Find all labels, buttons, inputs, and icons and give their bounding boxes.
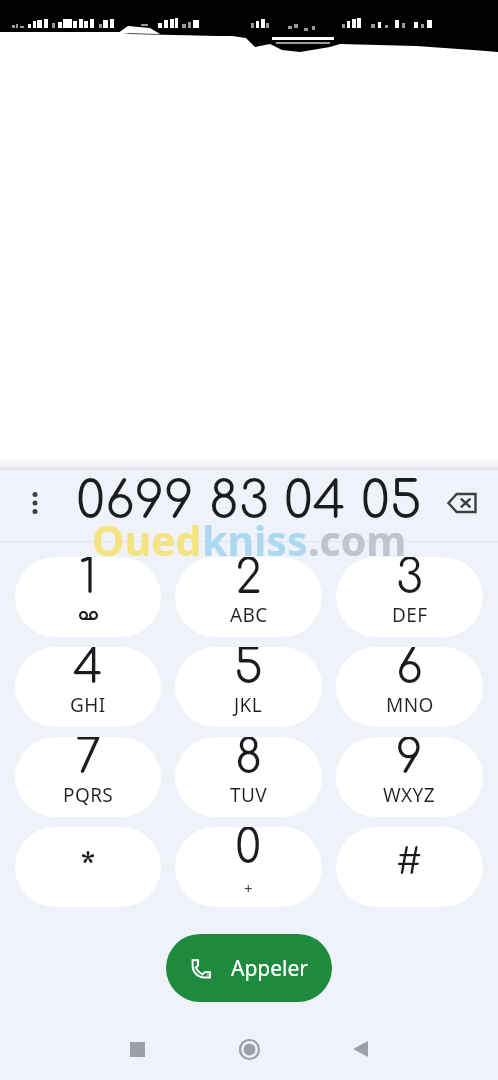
staticText: * xyxy=(80,848,96,894)
button[interactable]: Backspace xyxy=(440,481,484,525)
button[interactable]: 7 xyxy=(15,737,161,817)
staticText: WXYZ xyxy=(383,782,436,808)
button[interactable]: More options xyxy=(12,480,58,526)
staticText: 7 xyxy=(75,737,102,783)
button[interactable]: 4 xyxy=(15,647,161,727)
button[interactable]: 0 xyxy=(175,827,322,907)
button[interactable]: 5 xyxy=(175,647,322,727)
staticText: 1 xyxy=(79,557,97,603)
staticText: # xyxy=(396,842,423,882)
button[interactable]: 2 xyxy=(175,557,322,637)
button[interactable]: Recent apps xyxy=(113,1025,161,1073)
button[interactable]: Home xyxy=(225,1025,273,1073)
button[interactable]: 3 xyxy=(336,557,483,637)
staticText: 0 xyxy=(235,827,262,873)
button[interactable]: * xyxy=(15,827,161,907)
staticText: ABC xyxy=(230,602,268,628)
staticText: 5 xyxy=(234,647,263,693)
staticText: GHI xyxy=(70,692,106,718)
staticText: 0699 83 04 05 xyxy=(76,473,422,530)
staticText: DEF xyxy=(392,602,428,628)
staticText: TUV xyxy=(230,782,268,808)
staticText: .com xyxy=(308,512,407,568)
staticText: 8 xyxy=(235,737,263,783)
staticText: JKL xyxy=(234,692,263,718)
button[interactable]: Back xyxy=(336,1025,384,1073)
staticText: + xyxy=(244,878,253,898)
staticText: PQRS xyxy=(63,782,114,808)
staticText: MNO xyxy=(386,692,434,718)
staticText: 4 xyxy=(73,647,103,693)
button[interactable]: 1 xyxy=(15,557,161,637)
staticText: Oued xyxy=(92,512,202,568)
staticText: 6 xyxy=(396,647,423,693)
button[interactable]: # xyxy=(336,827,483,907)
staticText: 9 xyxy=(396,737,423,783)
button[interactable]: 8 xyxy=(175,737,322,817)
staticText: 3 xyxy=(396,557,423,603)
button[interactable]: 9 xyxy=(336,737,483,817)
staticText: kniss xyxy=(202,512,308,568)
button[interactable]: 6 xyxy=(336,647,483,727)
button[interactable]: Appeler xyxy=(166,934,332,1002)
staticText: 2 xyxy=(235,557,262,603)
staticText: Appeler xyxy=(231,954,309,983)
